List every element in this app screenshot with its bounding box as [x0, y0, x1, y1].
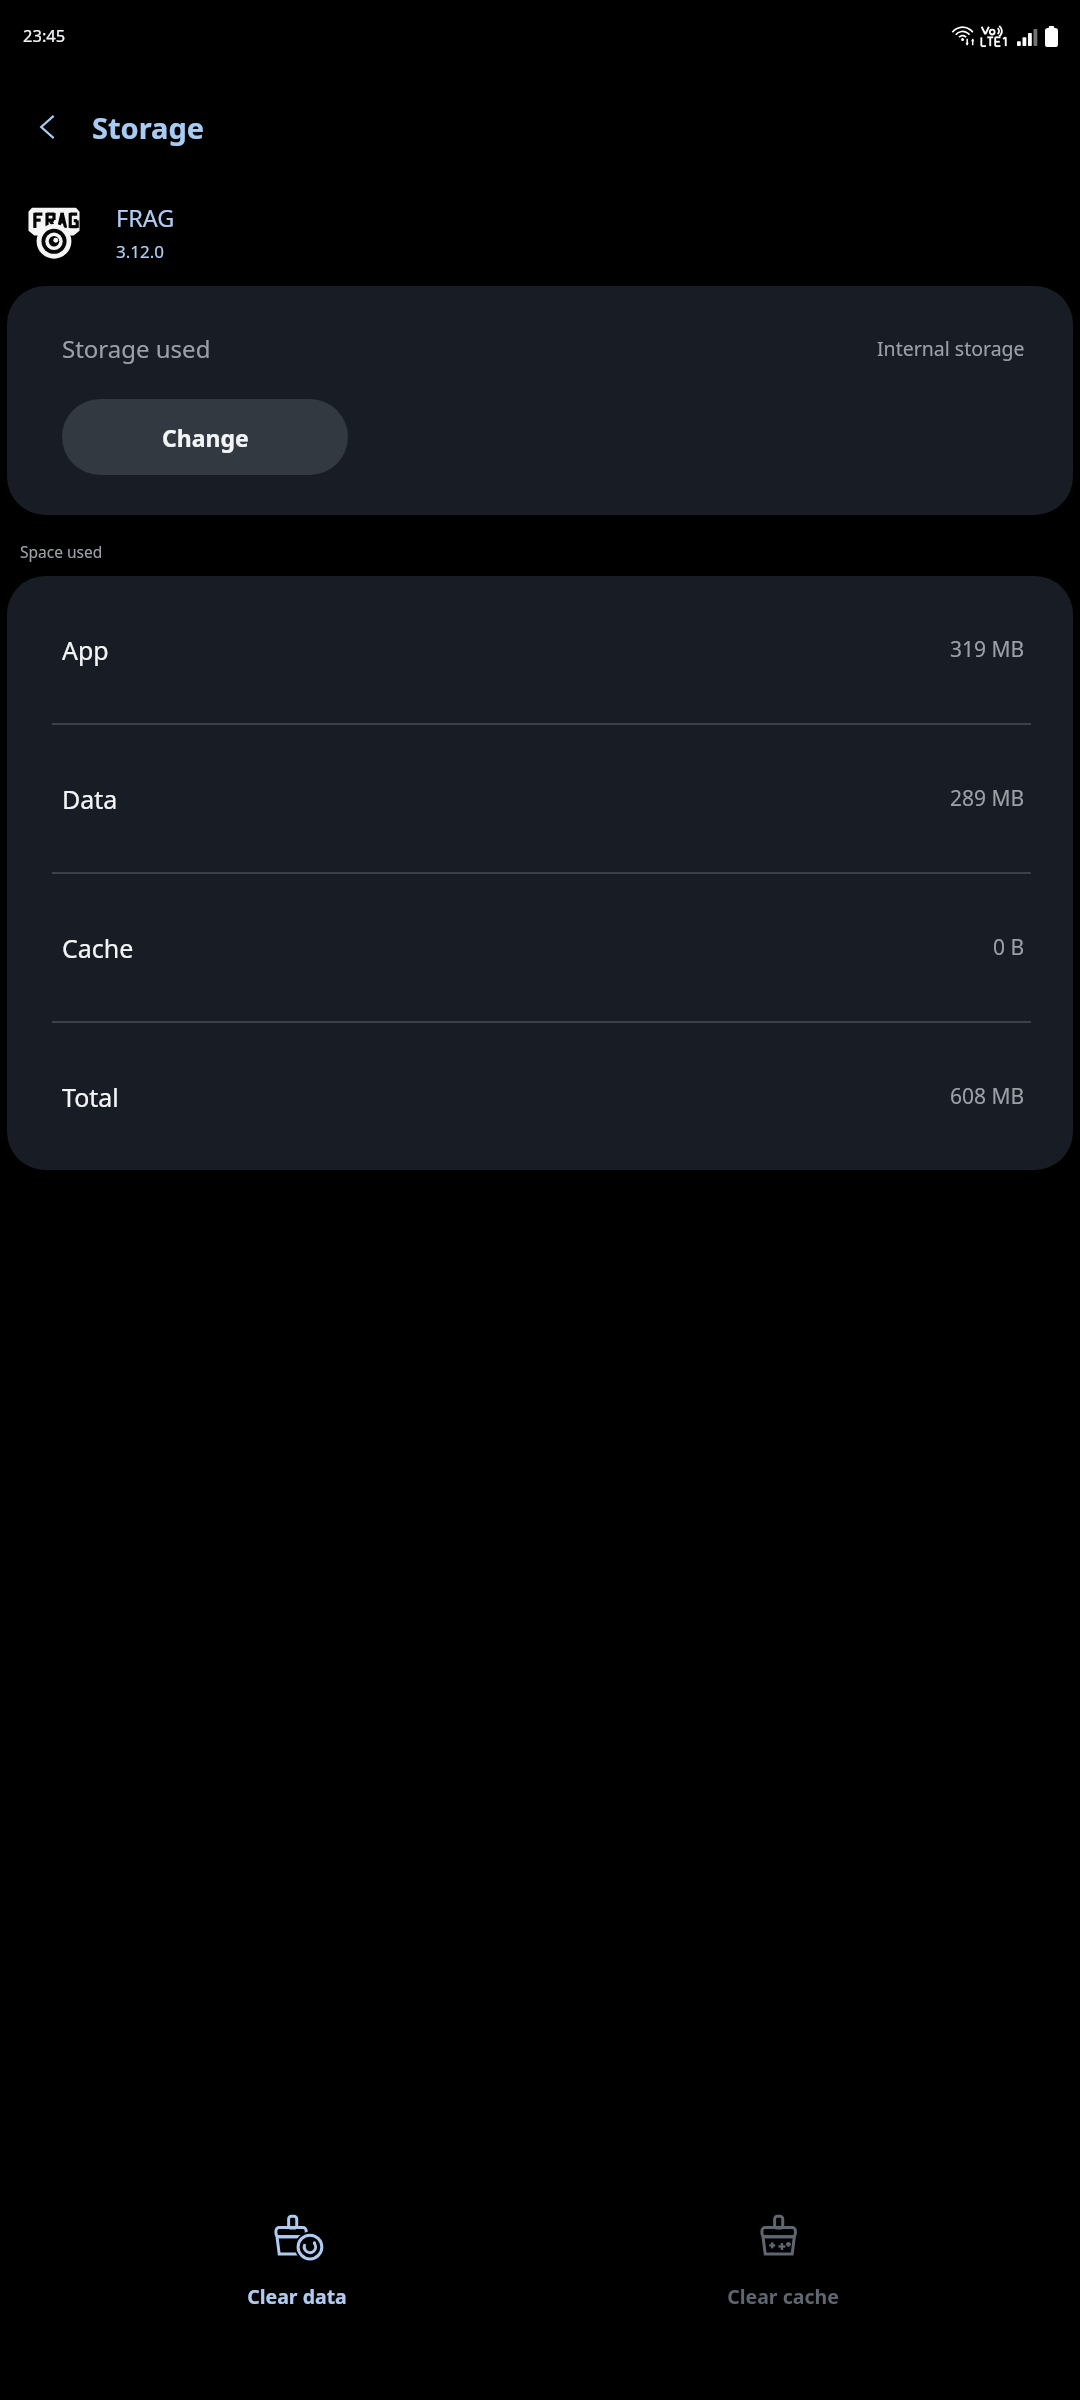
staticText: Storage — [92, 108, 205, 147]
button[interactable]: Data — [7, 725, 1073, 872]
staticText: App — [62, 633, 109, 667]
staticText: Clear data — [247, 2283, 347, 2310]
staticText: Cache — [62, 931, 134, 965]
button[interactable]: Total — [7, 1023, 1073, 1170]
staticText: Change — [162, 422, 249, 453]
staticText: Total — [62, 1080, 119, 1114]
staticText: 608 MB — [950, 1082, 1025, 1111]
staticText: FRAG — [116, 202, 175, 234]
staticText: Storage used — [62, 332, 211, 365]
button[interactable]: App — [7, 576, 1073, 723]
staticText: 289 MB — [950, 784, 1025, 813]
staticText: 3.12.0 — [116, 240, 165, 263]
staticText: Clear cache — [727, 2283, 839, 2310]
button[interactable]: Cache — [7, 874, 1073, 1021]
staticText: Data — [62, 782, 118, 816]
staticText: 319 MB — [950, 635, 1025, 664]
staticText: 23:45 — [23, 24, 66, 46]
button[interactable]: Change — [62, 399, 348, 475]
button[interactable]: Back — [18, 96, 80, 158]
staticText: 0 B — [993, 933, 1025, 962]
staticText: Internal storage — [877, 335, 1025, 362]
button[interactable]: Clear data — [107, 2185, 487, 2365]
staticText: Space used — [20, 541, 103, 562]
button[interactable]: Clear cache — [593, 2185, 973, 2365]
